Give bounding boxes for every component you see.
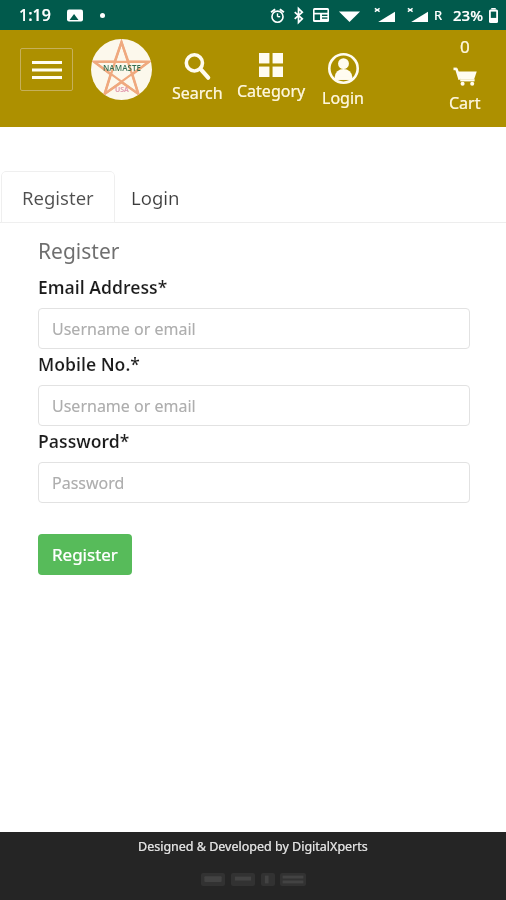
staticText: NAMASTE	[103, 62, 141, 73]
button[interactable]: Register	[38, 534, 132, 575]
staticText: Password	[52, 472, 125, 494]
button[interactable]: Register	[1, 171, 115, 223]
button[interactable]: Login	[115, 171, 195, 223]
button[interactable]: Search	[164, 53, 230, 104]
staticText: Password*	[38, 429, 130, 453]
staticText: Register	[52, 543, 118, 566]
staticText: Register	[38, 237, 120, 266]
staticText: Username or email	[52, 318, 196, 340]
staticText: Username or email	[52, 395, 196, 417]
button[interactable]: Username or email	[38, 385, 470, 426]
button[interactable]: Category	[230, 53, 312, 102]
button[interactable]: Username or email	[38, 308, 470, 349]
button[interactable]: Cart	[435, 35, 495, 114]
staticText: 1:19	[19, 4, 51, 26]
staticText: R	[434, 6, 443, 24]
staticText: Email Address*	[38, 275, 168, 299]
staticText: Mobile No.*	[38, 352, 140, 376]
button[interactable]: Password	[38, 462, 470, 503]
staticText: Designed & Developed by DigitalXperts	[138, 838, 368, 855]
staticText: 23%	[453, 5, 483, 25]
staticText: Cart	[449, 92, 481, 114]
staticText: 0	[460, 35, 470, 58]
staticText: Search	[172, 82, 223, 104]
staticText: Register	[22, 185, 94, 210]
button[interactable]: Login	[312, 53, 374, 109]
button[interactable]: Open menu	[20, 48, 73, 91]
button[interactable]: Namaste home	[91, 39, 152, 100]
staticText: Login	[322, 87, 364, 109]
staticText: USA	[115, 85, 129, 95]
staticText: Login	[131, 185, 180, 210]
staticText: Category	[237, 80, 306, 102]
